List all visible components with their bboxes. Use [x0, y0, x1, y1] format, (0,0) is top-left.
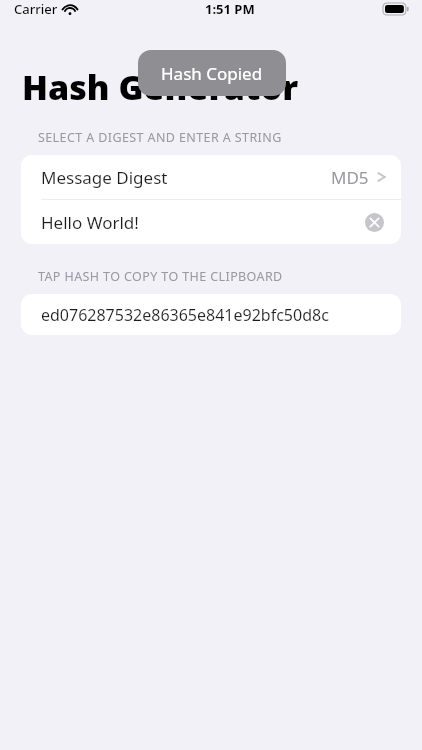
staticText: SELECT A DIGEST AND ENTER A STRING: [38, 129, 282, 146]
staticText: ed076287532e86365e841e92bfc50d8c: [41, 304, 329, 326]
button[interactable]: Message Digest: [21, 155, 401, 199]
staticText: Hash Copied: [161, 62, 263, 85]
staticText: 1:51 PM: [205, 0, 255, 18]
button[interactable]: ed076287532e86365e841e92bfc50d8c: [21, 294, 401, 335]
staticText: Hash Generator: [22, 64, 299, 110]
staticText: Message Digest: [41, 166, 168, 189]
staticText: Hello World!: [41, 211, 139, 234]
button[interactable]: Clear text: [363, 211, 385, 233]
button[interactable]: Hello World!: [21, 200, 401, 244]
staticText: Carrier: [14, 0, 58, 18]
staticText: TAP HASH TO COPY TO THE CLIPBOARD: [38, 268, 283, 285]
staticText: MD5: [331, 166, 369, 189]
